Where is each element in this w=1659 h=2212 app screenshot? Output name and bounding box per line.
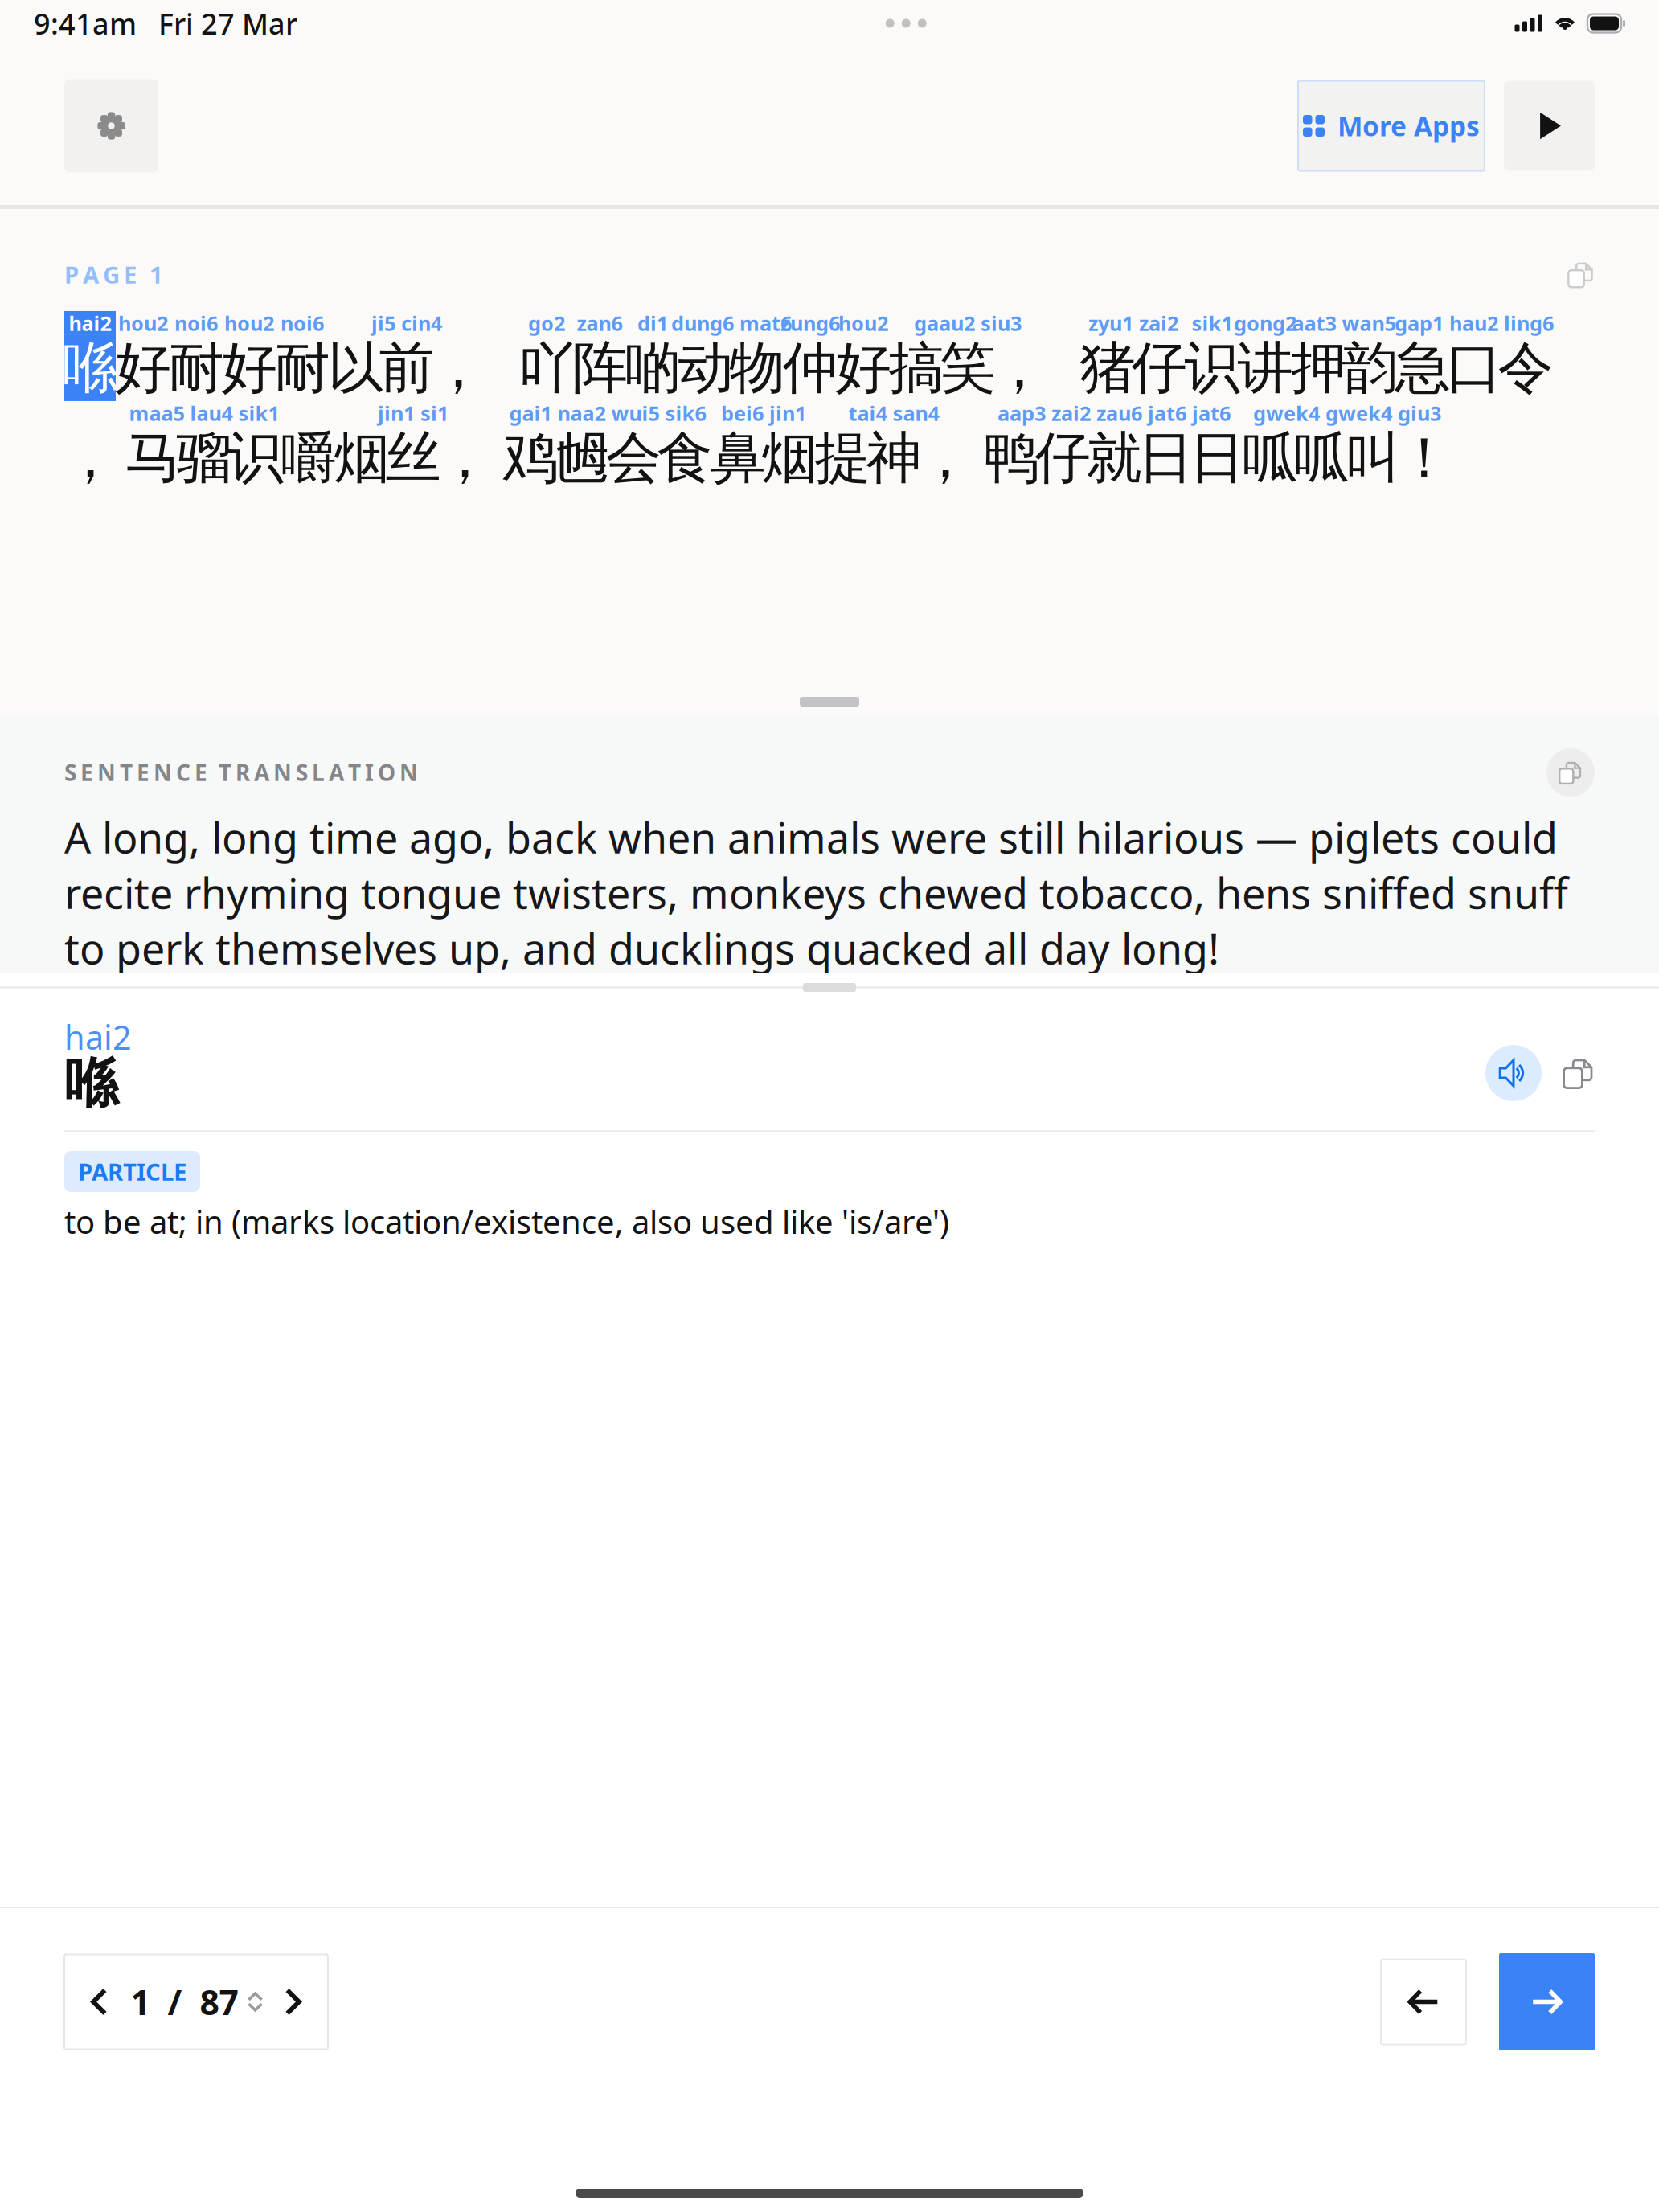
staticText: dung6 mat6 <box>671 310 792 337</box>
staticText: 日 <box>1138 424 1193 492</box>
staticText: 吖 <box>519 334 574 402</box>
staticText: go2 <box>528 310 565 337</box>
staticText: zan6 <box>577 310 623 337</box>
staticText: aap3 zai2 zau6 jat6 jat6 <box>997 400 1231 427</box>
staticText: zyu1 zai2 <box>1088 310 1178 337</box>
staticText: ！ <box>1397 424 1452 492</box>
staticText: 仲 <box>782 334 838 402</box>
staticText: maa5 lau4 sik1 <box>129 400 279 427</box>
staticText: hou2 <box>224 310 274 337</box>
staticText: 前 <box>379 334 434 402</box>
staticText: 韵 <box>1342 334 1397 402</box>
staticText: 丝 <box>385 424 441 492</box>
staticText: 阵 <box>572 334 627 402</box>
staticText: ， <box>991 334 1047 402</box>
staticText: 急 <box>1395 334 1450 402</box>
staticText: 笑 <box>940 334 995 402</box>
staticText: 提 <box>815 424 870 492</box>
staticText: 烟 <box>762 424 817 492</box>
button[interactable]: Play <box>1504 81 1595 171</box>
staticText: 食 <box>657 424 713 492</box>
staticText: 乸 <box>554 424 610 492</box>
staticText: hou2 <box>118 310 168 337</box>
staticText: aat3 wan5 <box>1292 310 1396 337</box>
staticText: hai2 <box>64 1015 132 1059</box>
staticText: 喺 <box>64 1051 118 1116</box>
staticText: 物 <box>729 334 785 402</box>
staticText: 9:41am Fri 27 Mar <box>34 4 297 43</box>
staticText: hai2 <box>69 310 111 337</box>
staticText: hou2 <box>838 310 888 337</box>
staticText: P A G E 1 <box>64 259 163 290</box>
staticText: 嚼 <box>281 424 336 492</box>
button[interactable]: Copy sentence <box>1567 261 1595 288</box>
button[interactable]: More Apps <box>1298 81 1485 171</box>
staticText: 叫 <box>1345 424 1401 492</box>
button[interactable]: Next <box>1499 1953 1595 2050</box>
staticText: 耐 <box>274 334 330 402</box>
staticText: 令 <box>1498 334 1553 402</box>
staticText: 识 <box>228 424 283 492</box>
staticText: 好 <box>836 334 891 402</box>
staticText: 鼻 <box>710 424 766 492</box>
staticText: 喺 <box>62 334 118 402</box>
staticText: gaau2 siu3 <box>914 310 1022 337</box>
staticText: 仔 <box>1035 424 1090 492</box>
staticText: 好 <box>115 334 171 402</box>
staticText: zung6 <box>780 310 840 337</box>
staticText: tai4 san4 <box>848 400 939 427</box>
staticText: di1 <box>637 310 668 337</box>
staticText: ， <box>430 334 486 402</box>
staticText: ， <box>437 424 492 492</box>
staticText: 烟 <box>334 424 389 492</box>
staticText: gong2 <box>1234 310 1296 337</box>
button[interactable]: Settings <box>64 79 158 172</box>
staticText: A long, long time ago, back when animals… <box>64 809 1568 976</box>
staticText: ， <box>62 424 118 492</box>
staticText: 会 <box>606 424 661 492</box>
staticText: 猪 <box>1080 334 1135 402</box>
staticText: 以 <box>328 334 383 402</box>
staticText: 耐 <box>168 334 224 402</box>
button[interactable]: Play pronunciation <box>1485 1045 1542 1101</box>
staticText: 马 <box>125 424 180 492</box>
staticText: ji5 cin4 <box>371 310 442 337</box>
staticText: gai1 naa2 wui5 sik6 <box>509 400 706 427</box>
staticText: noi6 <box>281 310 324 337</box>
staticText: noi6 <box>174 310 218 337</box>
staticText: 呱 <box>1242 424 1298 492</box>
staticText: S E N T E N C E T R A N S L A T I O N <box>64 757 418 787</box>
staticText: 口 <box>1446 334 1502 402</box>
staticText: gwek4 gwek4 giu3 <box>1253 400 1441 427</box>
staticText: 日 <box>1189 424 1245 492</box>
staticText: gap1 hau2 ling6 <box>1395 310 1554 337</box>
staticText: to be at; in (marks location/existence, … <box>64 1200 949 1243</box>
staticText: 搞 <box>889 334 944 402</box>
staticText: sik1 <box>1192 310 1233 337</box>
button[interactable]: Copy word <box>1563 1057 1595 1089</box>
staticText: ， <box>918 424 973 492</box>
staticText: 1 / 87 <box>131 1979 238 2025</box>
staticText: 鸡 <box>503 424 558 492</box>
staticText: 鸭 <box>983 424 1039 492</box>
button[interactable]: Copy translation <box>1546 748 1595 797</box>
staticText: 骝 <box>176 424 232 492</box>
button[interactable]: Page navigation <box>64 1954 328 2049</box>
staticText: 动 <box>678 334 733 402</box>
staticText: PARTICLE <box>78 1156 186 1187</box>
staticText: bei6 jin1 <box>721 400 806 427</box>
staticText: jin1 si1 <box>378 400 449 427</box>
staticText: 啲 <box>625 334 680 402</box>
staticText: 讲 <box>1237 334 1293 402</box>
button[interactable]: Previous <box>1381 1959 1466 2044</box>
staticText: 押 <box>1290 334 1346 402</box>
staticText: More Apps <box>1337 108 1480 144</box>
staticText: 呱 <box>1294 424 1349 492</box>
staticText: 就 <box>1086 424 1142 492</box>
staticText: 好 <box>221 334 277 402</box>
staticText: 仔 <box>1131 334 1187 402</box>
staticText: 神 <box>866 424 922 492</box>
staticText: 识 <box>1184 334 1240 402</box>
